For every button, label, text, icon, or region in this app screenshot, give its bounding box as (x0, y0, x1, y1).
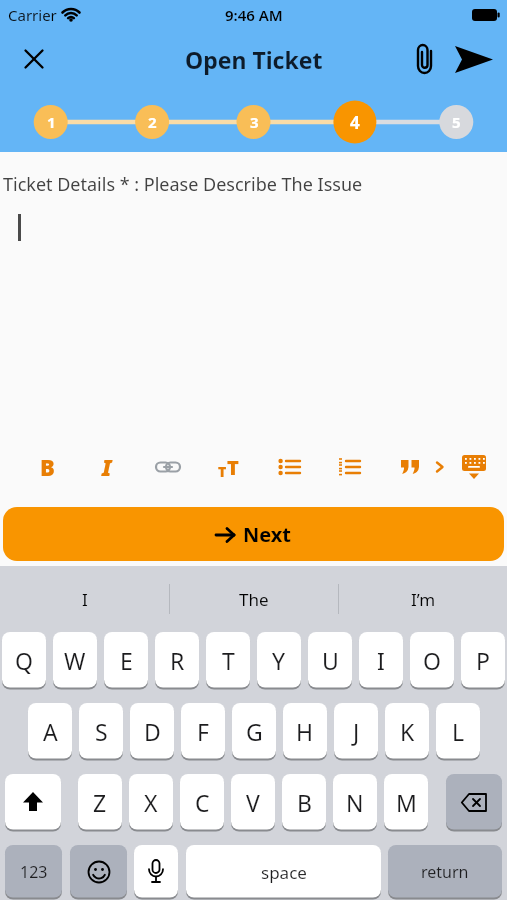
button[interactable]: B (25, 445, 69, 489)
button[interactable]: space (186, 845, 381, 899)
button[interactable]: G (232, 703, 276, 760)
staticText: K (400, 716, 415, 747)
button[interactable]: U (308, 632, 352, 689)
button[interactable]: Z (78, 774, 122, 831)
staticText: G (246, 716, 263, 747)
button[interactable]: The (170, 588, 338, 620)
staticText: P (476, 645, 490, 676)
staticText: L (452, 716, 465, 747)
button[interactable]: V (231, 774, 275, 831)
staticText: U (322, 645, 339, 676)
staticText: C (195, 787, 210, 818)
button[interactable]: 123 (5, 845, 62, 899)
button[interactable] (267, 445, 311, 489)
button[interactable] (327, 445, 371, 489)
button[interactable]: M (384, 774, 428, 831)
button[interactable] (134, 845, 178, 899)
button[interactable] (453, 38, 495, 80)
button[interactable]: Next (3, 507, 504, 561)
staticText: M (396, 787, 417, 818)
button[interactable]: B (282, 774, 326, 831)
staticText: 3 (250, 112, 259, 132)
staticText: W (64, 645, 86, 676)
staticText: T (227, 454, 239, 481)
staticText: I (102, 452, 112, 482)
staticText: O (423, 645, 441, 676)
button[interactable]: I (359, 632, 403, 689)
staticText: Y (272, 645, 286, 676)
staticText: E (120, 645, 133, 676)
button[interactable]: K (385, 703, 429, 760)
staticText: 9:46 AM (225, 5, 283, 25)
button[interactable] (432, 445, 448, 489)
staticText: 2 (148, 112, 157, 132)
button[interactable]: E (104, 632, 148, 689)
button[interactable]: T (206, 445, 250, 489)
staticText: Next (243, 521, 292, 548)
staticText: I (377, 645, 385, 676)
button[interactable]: R (155, 632, 199, 689)
staticText: Carrier (8, 5, 57, 25)
button[interactable] (405, 39, 445, 79)
staticText: space (261, 861, 307, 884)
staticText: H (296, 716, 314, 747)
button[interactable] (16, 41, 52, 77)
button[interactable] (388, 445, 432, 489)
button[interactable]: T (206, 632, 250, 689)
staticText: 123 (20, 861, 48, 883)
staticText: 5 (452, 112, 461, 132)
staticText: Q (15, 645, 33, 676)
button[interactable] (70, 845, 127, 899)
staticText: F (197, 716, 209, 747)
staticText: 4 (350, 111, 360, 134)
button[interactable]: X (129, 774, 173, 831)
button[interactable] (5, 774, 61, 831)
staticText: V (246, 787, 260, 818)
staticText: R (170, 645, 185, 676)
staticText: Z (93, 787, 107, 818)
staticText: 1 (47, 112, 56, 132)
button[interactable]: Y (257, 632, 301, 689)
staticText: The (239, 588, 269, 611)
staticText: A (43, 716, 58, 747)
staticText: Open Ticket (185, 44, 323, 75)
button[interactable]: S (79, 703, 123, 760)
button[interactable]: F (181, 703, 225, 760)
button[interactable]: W (53, 632, 97, 689)
staticText: I (82, 588, 88, 611)
button[interactable]: J (334, 703, 378, 760)
staticText: T (218, 462, 227, 481)
staticText: Ticket Details * : Please Describe The I… (3, 172, 363, 197)
staticText: X (144, 787, 158, 818)
button[interactable]: I (85, 445, 129, 489)
button[interactable]: return (388, 845, 502, 899)
button[interactable]: L (436, 703, 480, 760)
button[interactable] (146, 445, 190, 489)
staticText: T (222, 645, 235, 676)
button[interactable]: D (130, 703, 174, 760)
staticText: S (95, 716, 108, 747)
staticText: I’m (411, 588, 436, 611)
staticText: J (353, 716, 360, 747)
button[interactable]: A (28, 703, 72, 760)
button[interactable]: H (283, 703, 327, 760)
staticText: N (346, 787, 364, 818)
button[interactable] (454, 445, 494, 489)
staticText: D (144, 716, 161, 747)
button[interactable]: I’m (339, 588, 507, 620)
staticText: B (40, 452, 55, 482)
button[interactable]: N (333, 774, 377, 831)
staticText: B (297, 787, 312, 818)
button[interactable] (446, 774, 502, 831)
button[interactable]: C (180, 774, 224, 831)
button[interactable]: O (410, 632, 454, 689)
staticText: return (421, 861, 469, 883)
button[interactable]: Q (2, 632, 46, 689)
button[interactable]: P (461, 632, 505, 689)
button[interactable]: I (0, 588, 169, 620)
